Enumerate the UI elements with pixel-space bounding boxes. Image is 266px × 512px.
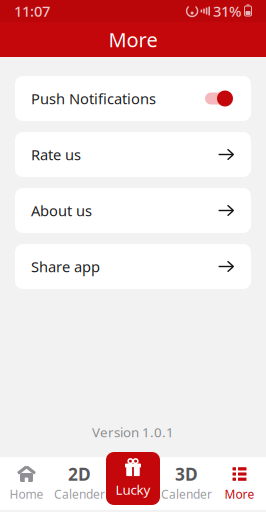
staticText: Calender xyxy=(54,486,105,502)
button[interactable]: Calender xyxy=(53,457,106,509)
staticText: About us xyxy=(31,201,92,220)
staticText: Version 1.0.1 xyxy=(92,423,174,441)
button[interactable]: Share app xyxy=(15,244,251,289)
button[interactable]: About us xyxy=(15,188,251,233)
staticText: 31% xyxy=(213,1,241,21)
button[interactable]: Home xyxy=(0,457,53,509)
staticText: 11:07 xyxy=(14,1,50,21)
staticText: Calender xyxy=(161,486,212,502)
staticText: 3D xyxy=(175,462,198,485)
staticText: More xyxy=(108,26,157,53)
button[interactable]: Calender xyxy=(160,457,213,509)
staticText: More xyxy=(224,486,254,502)
staticText: Rate us xyxy=(31,145,81,164)
staticText: 2D xyxy=(68,462,91,485)
staticText: Push Notifications xyxy=(31,89,156,108)
staticText: Lucky xyxy=(115,481,150,498)
button[interactable]: Lucky xyxy=(106,452,160,505)
button[interactable]: Push Notifications xyxy=(15,76,251,121)
button[interactable]: More xyxy=(213,457,266,509)
staticText: Share app xyxy=(31,257,100,276)
staticText: Home xyxy=(9,486,43,502)
button[interactable]: Rate us xyxy=(15,132,251,177)
